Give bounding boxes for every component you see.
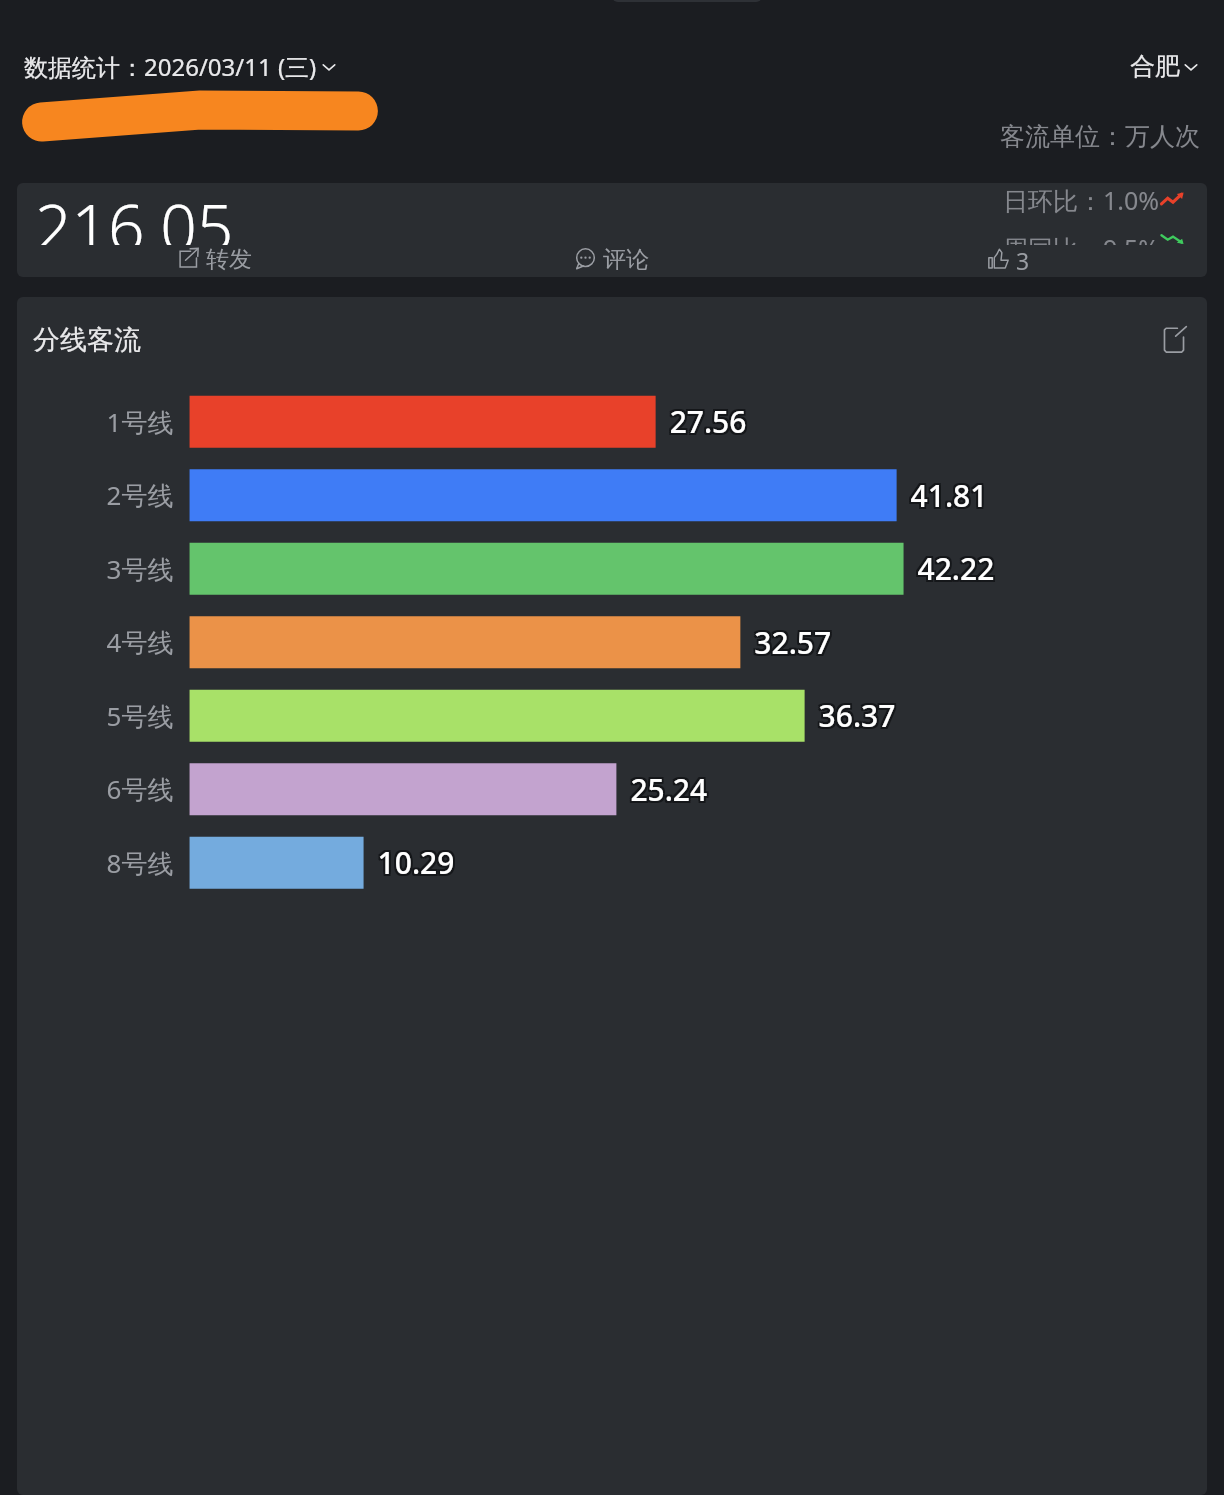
button[interactable]: 3 <box>810 245 1207 271</box>
staticText: 客流单位：万人次 <box>1000 121 1200 152</box>
staticText: 转发 <box>206 245 252 271</box>
staticText: 评论 <box>603 245 649 271</box>
staticText: 合肥 <box>1130 51 1180 82</box>
button[interactable]: Edit <box>1157 323 1191 357</box>
staticText: 3 <box>1016 245 1030 271</box>
button[interactable]: 转发 <box>17 245 413 271</box>
button[interactable]: 评论 <box>413 245 810 271</box>
button[interactable]: 216.05 <box>17 183 1207 277</box>
staticText: 数据统计：2026/03/11 (三) <box>24 50 317 83</box>
staticText: 日环比：1.0% <box>1003 183 1160 217</box>
button[interactable]: 合肥 <box>1130 51 1200 82</box>
staticText: 分线客流 <box>33 323 141 357</box>
button[interactable]: 数据统计：2026/03/11 (三) <box>24 50 338 83</box>
staticText: 216.05 <box>35 183 234 245</box>
staticText: 周同比：9.5% <box>1003 231 1160 245</box>
